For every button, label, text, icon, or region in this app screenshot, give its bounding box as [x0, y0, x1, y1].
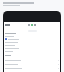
button[interactable] — [5, 62, 59, 66]
button[interactable] — [5, 66, 59, 70]
button[interactable] — [5, 38, 59, 40]
button[interactable] — [5, 58, 59, 62]
